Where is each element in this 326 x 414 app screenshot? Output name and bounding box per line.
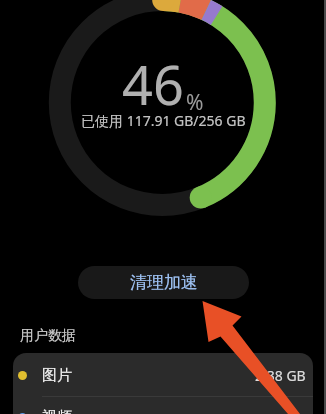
button[interactable]: 视频 bbox=[13, 397, 313, 414]
staticText: 已使用 117.91 GB/256 GB bbox=[81, 111, 246, 130]
staticText: % bbox=[186, 88, 204, 117]
staticText: 清理加速 bbox=[130, 272, 198, 293]
staticText: 用户数据 bbox=[20, 327, 76, 345]
staticText: 图片 bbox=[42, 366, 72, 385]
staticText: 视频 bbox=[42, 408, 72, 414]
staticText: 2.38 GB bbox=[255, 366, 306, 385]
button[interactable]: 图片 bbox=[13, 353, 313, 398]
button[interactable]: 清理加速 bbox=[78, 266, 249, 299]
staticText: 46 bbox=[122, 47, 184, 121]
other: Pointer bbox=[0, 0, 326, 414]
